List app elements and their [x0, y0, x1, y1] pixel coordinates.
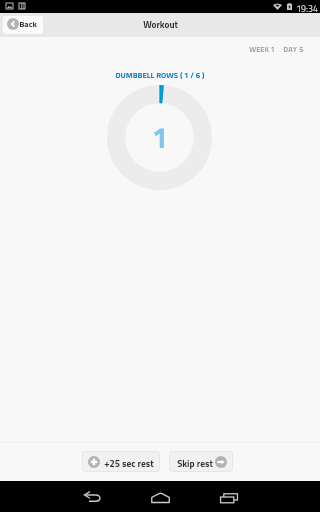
button[interactable]: Home — [140, 481, 180, 512]
staticText: DAY 5 — [283, 44, 304, 55]
button[interactable]: +25 sec rest — [82, 451, 160, 472]
button[interactable]: Back — [3, 16, 43, 34]
staticText: +25 sec rest — [104, 456, 154, 470]
staticText: Workout — [143, 18, 178, 32]
staticText: 1 — [152, 116, 168, 159]
button[interactable]: Back — [72, 481, 112, 512]
staticText: WEEK 1 — [249, 44, 275, 55]
staticText: 19:34 — [296, 2, 318, 15]
button[interactable]: Skip rest — [169, 451, 233, 472]
staticText: DUMBBELL ROWS ( 1 / 6 ) — [115, 69, 205, 81]
staticText: Back — [19, 17, 37, 30]
staticText: Skip rest — [177, 456, 213, 470]
button[interactable]: Recent apps — [209, 481, 249, 512]
